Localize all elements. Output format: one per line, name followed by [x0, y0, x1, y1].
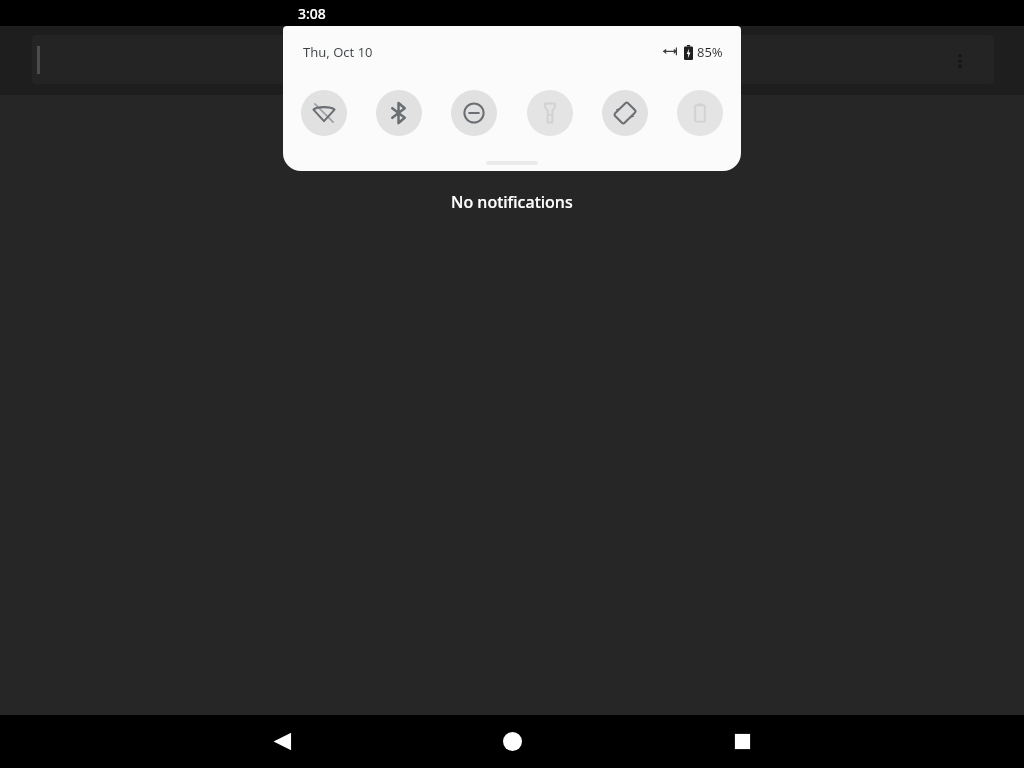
staticText: 85% [697, 43, 723, 61]
button[interactable]: Recent apps [715, 715, 769, 768]
button[interactable]: Auto rotate [602, 90, 648, 136]
other: Data transfer [662, 44, 678, 60]
button[interactable] [32, 35, 994, 84]
button[interactable]: Do Not Disturb [451, 90, 497, 136]
staticText: 3:08 [298, 4, 326, 23]
button[interactable]: Home [485, 715, 539, 768]
button[interactable]: Back [255, 715, 309, 768]
button[interactable]: Wi-Fi [301, 90, 347, 136]
staticText: Thu, Oct 10 [303, 43, 373, 61]
button[interactable]: Flashlight [527, 90, 573, 136]
staticText: No notifications [451, 191, 573, 213]
button[interactable]: Battery saver [677, 90, 723, 136]
other: Battery [684, 45, 693, 60]
button[interactable]: Bluetooth [376, 90, 422, 136]
